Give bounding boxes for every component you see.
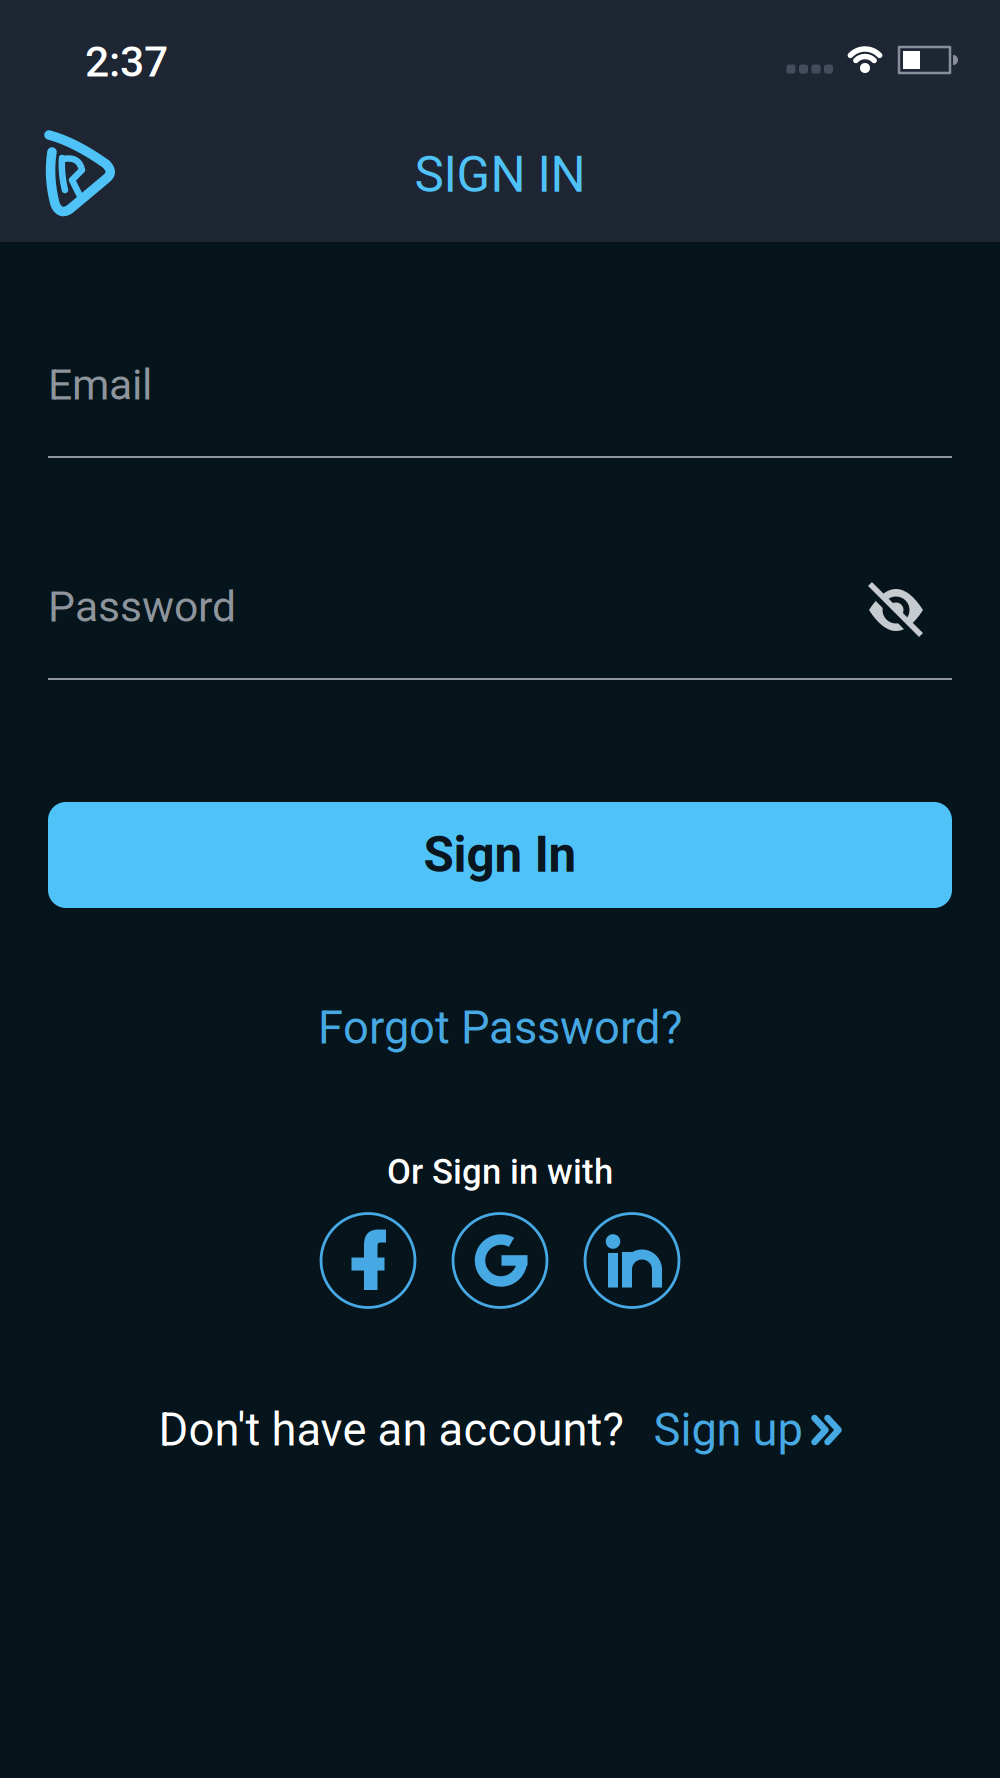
staticText: Sign In [423, 826, 576, 884]
staticText: SIGN IN [414, 146, 585, 204]
staticText: Or Sign in with [387, 1152, 613, 1192]
staticText: Password [48, 582, 236, 632]
staticText: Sign up [653, 1403, 802, 1456]
staticText: Email [48, 360, 152, 410]
button[interactable]: Sign in with Google [451, 1212, 548, 1309]
staticText: 2:37 [85, 37, 168, 87]
button[interactable]: Sign in with LinkedIn [583, 1212, 680, 1309]
button[interactable]: Show password [866, 580, 926, 640]
button[interactable]: Email [0, 363, 1000, 458]
staticText: Forgot Password? [318, 1001, 682, 1054]
button[interactable]: Sign In [0, 802, 1000, 908]
button[interactable]: Sign up [653, 1403, 841, 1456]
button[interactable]: Forgot Password? [318, 1002, 682, 1054]
button[interactable]: Password [0, 585, 1000, 680]
staticText: Don't have an account? [158, 1403, 623, 1456]
button[interactable]: Sign in with Facebook [319, 1212, 416, 1309]
